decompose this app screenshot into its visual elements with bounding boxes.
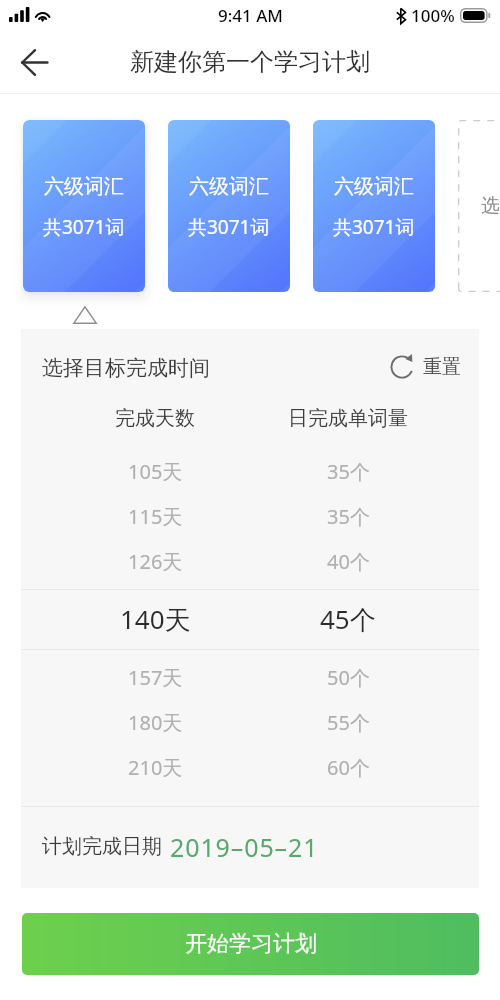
staticText: 六级词汇 — [334, 174, 414, 199]
staticText: 计划完成日期 — [42, 834, 162, 859]
staticText: 210天 — [128, 754, 183, 781]
button[interactable]: 157天 — [21, 655, 479, 699]
staticText: 六级词汇 — [44, 174, 124, 199]
staticText: 105天 — [128, 458, 183, 485]
button[interactable]: 105天 — [21, 449, 479, 493]
staticText: 2019–05–21 — [170, 830, 319, 864]
staticText: 35个 — [327, 458, 370, 485]
button[interactable]: 选择词书 — [458, 120, 500, 292]
staticText: 选择词书 — [481, 194, 500, 218]
staticText: 140天 — [120, 601, 191, 637]
button[interactable]: 六级词汇 — [168, 120, 290, 292]
staticText: 40个 — [327, 548, 370, 575]
staticText: 180天 — [128, 709, 183, 736]
button[interactable]: 六级词汇 — [313, 120, 435, 292]
button[interactable]: Back — [0, 31, 70, 93]
button[interactable]: 开始学习计划 — [22, 913, 479, 975]
button[interactable]: 180天 — [21, 700, 479, 744]
staticText: 157天 — [128, 664, 183, 691]
staticText: 126天 — [128, 548, 183, 575]
staticText: 60个 — [327, 754, 370, 781]
staticText: 重置 — [423, 355, 461, 379]
button[interactable]: 126天 — [21, 539, 479, 583]
staticText: 115天 — [128, 503, 183, 530]
staticText: 完成天数 — [115, 406, 195, 431]
button[interactable]: 六级词汇 — [23, 120, 145, 292]
staticText: 35个 — [327, 503, 370, 530]
staticText: 50个 — [327, 664, 370, 691]
button[interactable]: 210天 — [21, 745, 479, 789]
button[interactable]: 115天 — [21, 494, 479, 538]
staticText: 9:41 AM — [218, 4, 283, 27]
button[interactable]: 重置 — [390, 351, 461, 383]
staticText: 共3071词 — [188, 214, 270, 240]
staticText: 100% — [411, 4, 455, 27]
staticText: 开始学习计划 — [185, 930, 317, 958]
staticText: 选择目标完成时间 — [42, 355, 210, 381]
staticText: 共3071词 — [333, 214, 415, 240]
staticText: 45个 — [320, 601, 376, 637]
button[interactable]: 140天 — [21, 597, 479, 641]
staticText: 新建你第一个学习计划 — [130, 47, 370, 77]
staticText: 共3071词 — [43, 214, 125, 240]
staticText: 日完成单词量 — [288, 406, 408, 431]
staticText: 55个 — [327, 709, 370, 736]
staticText: 六级词汇 — [189, 174, 269, 199]
